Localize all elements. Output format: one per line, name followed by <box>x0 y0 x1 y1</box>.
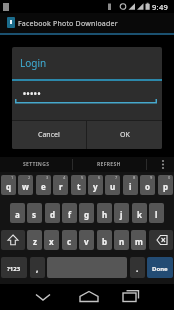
staticText: 0 <box>168 175 171 180</box>
staticText: e <box>41 181 46 192</box>
button[interactable]: o <box>140 175 155 195</box>
button[interactable]: e <box>36 175 51 195</box>
button[interactable] <box>1 230 25 250</box>
staticText: b <box>102 236 108 247</box>
button[interactable]: j <box>114 203 129 223</box>
staticText: o <box>145 181 150 192</box>
button[interactable]: x <box>44 230 59 250</box>
button[interactable]: v <box>79 230 94 250</box>
button[interactable]: OK <box>87 121 162 149</box>
staticText: 8 <box>133 175 136 180</box>
button[interactable]: y <box>88 175 103 195</box>
button[interactable]: i <box>123 175 138 195</box>
staticText: 7 <box>115 175 118 180</box>
button[interactable]: f <box>62 203 77 223</box>
button[interactable]: . <box>130 257 145 278</box>
staticText: v <box>84 236 89 247</box>
staticText: Done <box>152 265 168 273</box>
staticText: y <box>93 181 98 192</box>
button[interactable]: w <box>18 175 33 195</box>
button[interactable] <box>29 284 59 310</box>
staticText: x <box>49 236 54 247</box>
button[interactable]: u <box>105 175 120 195</box>
staticText: . <box>136 263 139 274</box>
staticText: c <box>67 236 72 247</box>
button[interactable]: b <box>97 230 112 250</box>
staticText: q <box>6 181 12 192</box>
staticText: 9:49 <box>152 2 169 12</box>
button[interactable]: q <box>1 175 16 195</box>
staticText: i <box>129 181 132 192</box>
staticText: REFRESH <box>97 161 121 168</box>
staticText: 1 <box>11 175 14 180</box>
staticText: Login <box>20 56 47 70</box>
button[interactable]: n <box>114 230 129 250</box>
staticText: u <box>110 181 116 192</box>
staticText: f <box>68 209 72 220</box>
button[interactable]: s <box>27 203 42 223</box>
button[interactable]: Cancel <box>12 121 86 149</box>
button[interactable]: z <box>27 230 42 250</box>
staticText: k <box>137 209 142 220</box>
staticText: , <box>36 263 39 274</box>
button[interactable]: m <box>131 230 146 250</box>
staticText: SETTINGS <box>23 161 50 168</box>
staticText: s <box>32 209 37 220</box>
button[interactable]: p <box>158 175 173 195</box>
staticText: ••••• <box>23 88 42 99</box>
staticText: a <box>15 209 20 220</box>
staticText: h <box>102 209 108 220</box>
button[interactable]: , <box>30 257 45 278</box>
staticText: w <box>22 181 29 192</box>
button[interactable]: r <box>53 175 68 195</box>
button[interactable]: k <box>132 203 147 223</box>
button[interactable]: a <box>10 203 25 223</box>
button[interactable]: l <box>149 203 164 223</box>
button[interactable]: SETTINGS <box>0 157 72 172</box>
button[interactable] <box>149 230 173 250</box>
staticText: p <box>163 181 169 192</box>
button[interactable]: Done <box>147 257 173 278</box>
staticText: 6 <box>98 175 101 180</box>
button[interactable]: g <box>79 203 94 223</box>
staticText: Facebook Photo Downloader <box>18 19 118 29</box>
staticText: g <box>84 209 90 220</box>
staticText: 2 <box>28 175 31 180</box>
staticText: Cancel <box>38 130 60 140</box>
button[interactable]: c <box>62 230 77 250</box>
staticText: t <box>77 181 81 192</box>
staticText: 4 <box>63 175 66 180</box>
button[interactable]: t <box>71 175 86 195</box>
button[interactable] <box>146 157 174 172</box>
staticText: 3 <box>46 175 49 180</box>
staticText: j <box>120 209 123 220</box>
button[interactable] <box>117 284 147 310</box>
button[interactable] <box>74 284 104 310</box>
staticText: m <box>135 236 143 247</box>
staticText: n <box>119 236 125 247</box>
button[interactable]: d <box>45 203 60 223</box>
staticText: 5 <box>81 175 84 180</box>
button[interactable]: Facebook Photo Downloader <box>0 13 174 33</box>
staticText: d <box>50 209 56 220</box>
staticText: l <box>155 209 158 220</box>
button[interactable]: h <box>97 203 112 223</box>
button[interactable]: ?123 <box>1 257 27 278</box>
staticText: r <box>59 181 63 192</box>
staticText: ?123 <box>7 265 21 273</box>
button[interactable]: REFRESH <box>72 157 146 172</box>
staticText: z <box>33 236 37 247</box>
staticText: 9 <box>150 175 153 180</box>
staticText: OK <box>120 130 130 140</box>
